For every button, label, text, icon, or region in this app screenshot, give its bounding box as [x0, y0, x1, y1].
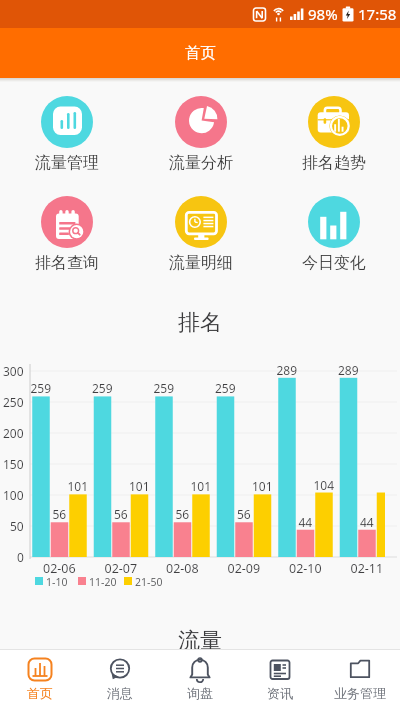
button[interactable]: 首页 — [0, 650, 80, 711]
staticText: 今日变化 — [302, 253, 366, 273]
staticText: 98% — [308, 4, 338, 24]
staticText: 流量 — [178, 627, 222, 649]
staticText: 流量分析 — [169, 153, 233, 173]
staticText: 流量管理 — [35, 153, 99, 173]
staticText: 排名 — [178, 309, 222, 337]
staticText: 消息 — [107, 685, 133, 701]
button[interactable]: 排名趋势 — [267, 96, 400, 173]
staticText: 询盘 — [187, 685, 213, 701]
button[interactable]: 流量分析 — [134, 96, 267, 173]
button[interactable]: 排名查询 — [0, 196, 134, 273]
staticText: 业务管理 — [334, 685, 386, 701]
button[interactable]: 流量管理 — [0, 96, 134, 173]
button[interactable]: 今日变化 — [267, 196, 400, 273]
staticText: 17:58 — [358, 4, 397, 24]
button[interactable]: 业务管理 — [320, 650, 400, 711]
staticText: 首页 — [27, 685, 53, 701]
button[interactable]: 资讯 — [240, 650, 320, 711]
staticText: 流量明细 — [169, 253, 233, 273]
button[interactable]: 询盘 — [160, 650, 240, 711]
button[interactable]: 流量明细 — [134, 196, 267, 273]
staticText: 资讯 — [267, 685, 293, 701]
button[interactable]: 消息 — [80, 650, 160, 711]
staticText: 首页 — [185, 43, 216, 63]
staticText: 排名查询 — [35, 253, 99, 273]
staticText: 排名趋势 — [302, 153, 366, 173]
